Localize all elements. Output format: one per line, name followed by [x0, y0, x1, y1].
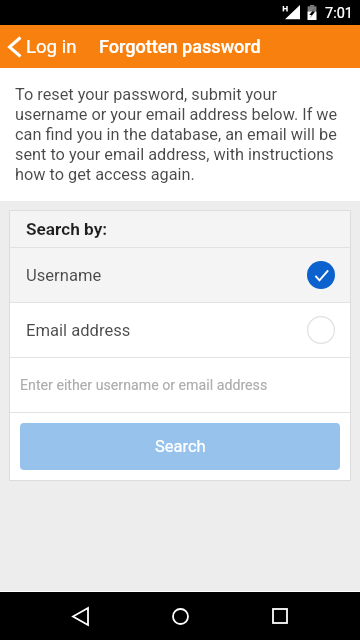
staticText: Forgotten password [99, 36, 261, 57]
button[interactable]: Username [10, 248, 350, 302]
button[interactable]: Enter either username or email address [10, 358, 350, 412]
staticText: Log in [26, 36, 77, 58]
button[interactable]: Email address [10, 303, 350, 357]
staticText: Enter either username or email address [20, 377, 268, 394]
staticText: Email address [26, 321, 131, 340]
staticText: Search by: [26, 219, 108, 239]
staticText: Username [26, 266, 102, 285]
button[interactable]: Back [64, 600, 96, 632]
button[interactable]: Home [164, 600, 196, 632]
staticText: To reset your password, submit your user… [15, 85, 342, 184]
button[interactable]: Log in [0, 25, 77, 68]
button[interactable]: Recent apps [264, 600, 296, 632]
staticText: Search [155, 437, 206, 456]
button[interactable]: Search [20, 423, 340, 470]
staticText: 7:01 [325, 5, 353, 22]
